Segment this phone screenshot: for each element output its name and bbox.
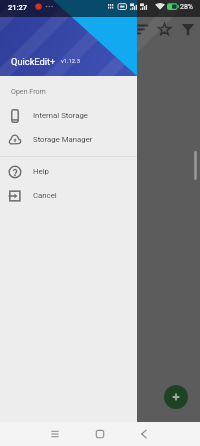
button[interactable]: Recent apps — [0, 422, 78, 446]
staticText: Help — [33, 167, 49, 176]
staticText: Open From — [11, 87, 46, 95]
button[interactable]: Internal Storage — [0, 104, 137, 127]
button[interactable]: Help — [0, 160, 137, 183]
button[interactable]: Cancel — [0, 184, 137, 207]
staticText: 21:27 — [8, 3, 28, 12]
staticText: Storage Manager — [33, 135, 93, 144]
staticText: QuickEdit+ — [11, 56, 56, 67]
staticText: Internal Storage — [33, 111, 88, 120]
button[interactable]: Storage Manager — [0, 128, 137, 151]
staticText: v1.12.3 — [61, 58, 80, 65]
button[interactable]: Back — [122, 422, 166, 446]
staticText: 28% — [180, 3, 193, 11]
button[interactable]: New document — [164, 385, 188, 409]
button[interactable]: Home — [78, 422, 122, 446]
staticText: Cancel — [33, 191, 57, 200]
